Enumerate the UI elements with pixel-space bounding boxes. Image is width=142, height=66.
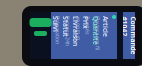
staticText: 49,90 EUR: [63, 37, 87, 44]
button[interactable]: Statut: [59, 47, 106, 57]
staticText: Clavier sans fil: [63, 17, 97, 24]
button[interactable]: Suivi: [59, 57, 106, 66]
button[interactable]: Prix: [59, 27, 106, 37]
button[interactable]: Livraison: [59, 37, 106, 47]
staticText: Prix: [63, 28, 76, 37]
staticText: 2 unités: [63, 27, 82, 34]
staticText: Article: [63, 8, 84, 17]
button[interactable]: Quantité: [59, 17, 106, 27]
staticText: Quantité: [63, 18, 92, 27]
staticText: Préparation: [63, 57, 91, 64]
staticText: Livraison: [63, 38, 93, 47]
button[interactable]: Article: [59, 7, 106, 17]
staticText: Suivi: [63, 58, 79, 66]
